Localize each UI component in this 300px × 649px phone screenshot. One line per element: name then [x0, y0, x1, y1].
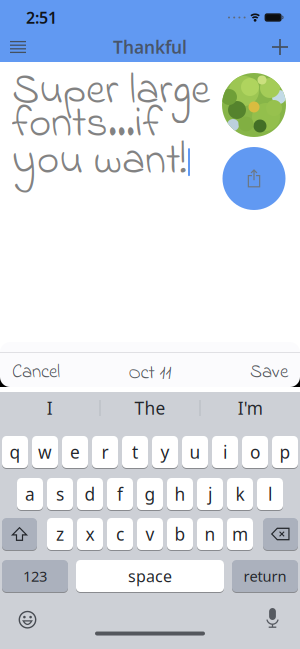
button[interactable]: s [47, 478, 73, 510]
staticText: t [132, 440, 138, 463]
staticText: w [38, 440, 52, 463]
button[interactable]: f [107, 478, 133, 510]
staticText: s [56, 482, 64, 505]
button[interactable]: c [107, 518, 133, 550]
staticText: a [25, 482, 35, 505]
staticText: h [174, 482, 185, 505]
staticText: u [189, 440, 200, 463]
button[interactable]: l [257, 478, 283, 510]
button[interactable]: o [242, 436, 268, 468]
button[interactable]: k [227, 478, 253, 510]
button[interactable] [0, 592, 12, 612]
button[interactable]: n [197, 518, 223, 550]
staticText: z [56, 522, 64, 545]
staticText: n [204, 522, 215, 545]
staticText: d [84, 482, 95, 505]
button[interactable] [0, 592, 16, 608]
staticText: v [145, 522, 154, 545]
staticText: I'm [238, 396, 263, 419]
button[interactable]: x [77, 518, 103, 550]
staticText: Oct 11 [128, 360, 171, 387]
staticText: i [223, 440, 227, 463]
staticText: 123 [23, 566, 47, 586]
button[interactable]: d [77, 478, 103, 510]
staticText: you want! [12, 131, 186, 193]
staticText: x [85, 522, 94, 545]
button[interactable]: Cancel [12, 359, 60, 386]
staticText: o [250, 440, 260, 463]
button[interactable]: Save [250, 359, 288, 386]
button[interactable]: p [272, 436, 298, 468]
button[interactable]: y [152, 436, 178, 468]
staticText: return [243, 566, 286, 586]
button[interactable]: The [100, 392, 199, 424]
staticText: m [232, 522, 248, 545]
button[interactable]: v [137, 518, 163, 550]
button[interactable]: g [137, 478, 163, 510]
button[interactable]: b [167, 518, 193, 550]
button[interactable]: a [17, 478, 43, 510]
staticText: 2:51 [26, 7, 57, 28]
button[interactable]: 123 [2, 560, 68, 592]
staticText: The [134, 396, 165, 419]
staticText: j [208, 482, 212, 505]
button[interactable]: z [47, 518, 73, 550]
staticText: k [235, 482, 244, 505]
staticText: Cancel [12, 359, 60, 386]
button[interactable]: u [182, 436, 208, 468]
staticText: Thankful [113, 35, 187, 58]
staticText: b [174, 522, 185, 545]
staticText: r [101, 440, 108, 463]
button[interactable] [2, 518, 37, 550]
staticText: p [279, 440, 290, 463]
staticText: Super large [12, 61, 210, 123]
button[interactable] [263, 518, 298, 550]
button[interactable]: t [122, 436, 148, 468]
button[interactable]: i [212, 436, 238, 468]
button[interactable] [222, 147, 285, 210]
staticText: fonts...if [12, 94, 163, 156]
staticText: f [117, 482, 123, 505]
button[interactable]: w [32, 436, 58, 468]
staticText: I [47, 396, 53, 419]
staticText: y [160, 440, 169, 463]
button[interactable]: q [2, 436, 28, 468]
button[interactable] [0, 41, 26, 53]
button[interactable]: h [167, 478, 193, 510]
button[interactable]: I [0, 392, 99, 424]
button[interactable]: I'm [200, 392, 300, 424]
staticText: g [144, 482, 155, 505]
button[interactable] [272, 39, 300, 55]
button[interactable]: r [92, 436, 118, 468]
staticText: e [70, 440, 80, 463]
staticText: space [128, 565, 172, 587]
staticText: Save [250, 359, 288, 386]
button[interactable]: m [227, 518, 253, 550]
button[interactable]: e [62, 436, 88, 468]
button[interactable]: j [197, 478, 223, 510]
staticText: q [9, 440, 20, 463]
staticText: l [268, 482, 272, 505]
staticText: c [116, 522, 124, 545]
button[interactable]: return [232, 560, 298, 592]
button[interactable]: space [76, 560, 224, 592]
